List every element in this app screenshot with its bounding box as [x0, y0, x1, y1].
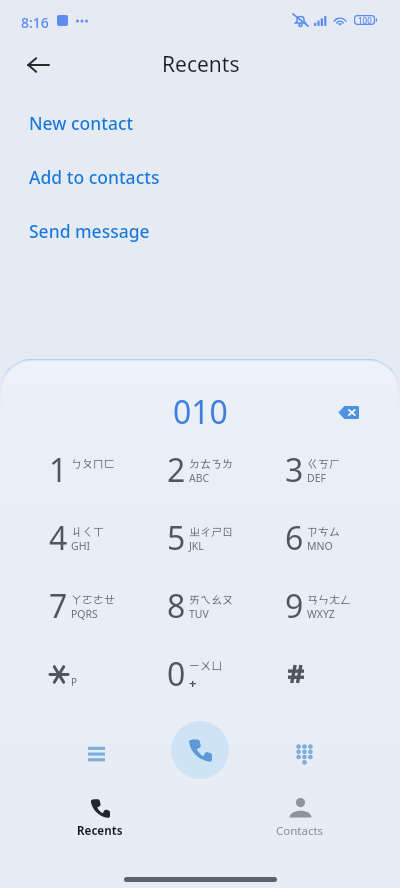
button[interactable]: Recents [0, 790, 200, 845]
button[interactable]: 1 [24, 436, 142, 504]
staticText: ㄧㄨㄩ [189, 657, 222, 673]
button[interactable]: 3 [260, 436, 378, 504]
staticText: 7 [49, 584, 68, 628]
staticText: Recents [77, 823, 123, 839]
staticText: PQRS [71, 607, 98, 621]
staticText: ABC [189, 471, 210, 485]
staticText: JKL [189, 539, 204, 553]
staticText: 8:16 [21, 13, 49, 32]
staticText: ㄓㄔㄕㄖ [189, 523, 233, 539]
button[interactable]: Add to contacts [0, 150, 400, 204]
staticText: 3 [285, 448, 304, 492]
staticText: ㄍㄎㄏ [307, 455, 340, 471]
staticText: 1 [49, 448, 68, 492]
staticText: ㄚㄛㄜㄝ [71, 591, 115, 607]
button[interactable]: 9 [260, 572, 378, 640]
button[interactable]: 4 [24, 504, 142, 572]
staticText: New contact [29, 111, 134, 135]
staticText: 8 [167, 584, 186, 628]
staticText: 5 [167, 516, 186, 560]
button[interactable]: P [24, 640, 142, 708]
staticText: 9 [285, 584, 304, 628]
staticText: 010 [173, 390, 228, 432]
staticText: + [189, 674, 197, 692]
button[interactable]: Call history [77, 733, 115, 771]
staticText: 0 [167, 652, 186, 696]
button[interactable]: Call [171, 721, 229, 779]
staticText: ㄐㄑㄒ [71, 523, 104, 539]
staticText: TUV [189, 607, 209, 621]
staticText: 4 [49, 516, 68, 560]
staticText: Contacts [276, 823, 324, 839]
staticText: Send message [29, 219, 150, 243]
button[interactable]: Delete [332, 396, 365, 429]
button[interactable]: Send message [0, 204, 400, 258]
staticText: DEF [307, 471, 326, 485]
button[interactable]: 0 [142, 640, 260, 708]
staticText: ㄗㄘㄙ [307, 523, 340, 539]
staticText: ㄉㄊㄋㄌ [189, 455, 233, 471]
staticText: WXYZ [307, 607, 335, 621]
staticText: GHI [71, 539, 90, 553]
button[interactable]: 8 [142, 572, 260, 640]
staticText: Add to contacts [29, 165, 160, 189]
staticText: Recents [162, 50, 240, 79]
button[interactable]: 5 [142, 504, 260, 572]
staticText: P [71, 675, 78, 689]
staticText: ㄢㄣㄤㄥ [307, 591, 351, 607]
button[interactable]: 2 [142, 436, 260, 504]
staticText: 100 [358, 15, 372, 25]
staticText: 2 [167, 448, 186, 492]
staticText: ㄞㄟㄠㄡ [189, 591, 233, 607]
staticText: 6 [285, 516, 304, 560]
button[interactable]: Dialpad [285, 735, 323, 773]
button[interactable]: New contact [0, 96, 400, 150]
button[interactable]: Back [16, 42, 61, 87]
button[interactable]: 6 [260, 504, 378, 572]
button[interactable]: 7 [24, 572, 142, 640]
button[interactable] [260, 640, 378, 708]
staticText: MNO [307, 539, 333, 553]
staticText: ㄅㄆㄇㄈ [71, 455, 115, 471]
button[interactable]: Contacts [200, 790, 400, 845]
